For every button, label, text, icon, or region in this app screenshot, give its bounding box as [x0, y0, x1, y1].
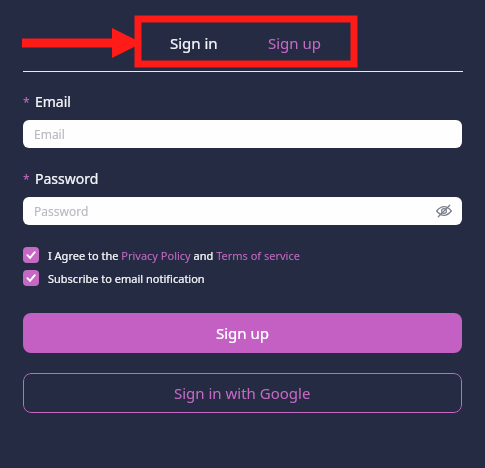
staticText: Password	[34, 203, 89, 219]
staticText: *	[23, 94, 30, 110]
button[interactable]: Sign in with Google	[23, 373, 462, 413]
staticText: Sign up	[268, 33, 321, 53]
button[interactable]: Password	[23, 197, 462, 225]
staticText: Sign up	[216, 323, 269, 343]
button[interactable]: Sign in	[156, 28, 232, 58]
staticText: Password	[35, 169, 99, 188]
button[interactable]: Checked	[23, 247, 300, 263]
button[interactable]: Sign up	[254, 28, 335, 58]
button[interactable]: Email	[23, 120, 462, 148]
staticText: Email	[34, 126, 65, 142]
staticText: *	[23, 171, 30, 187]
staticText: Subscribe to email notification	[48, 271, 205, 286]
button[interactable]: Checked	[23, 270, 205, 286]
button[interactable]: Checked	[23, 270, 39, 286]
staticText: Sign in with Google	[174, 383, 311, 403]
staticText: Email	[35, 92, 71, 111]
button[interactable]: Sign up	[23, 313, 462, 353]
staticText: Sign in	[170, 33, 218, 53]
button[interactable]: Checked	[23, 247, 39, 263]
button[interactable]: Show password	[436, 203, 452, 219]
staticText: I Agree to the Privacy Policy and Terms …	[48, 248, 300, 263]
